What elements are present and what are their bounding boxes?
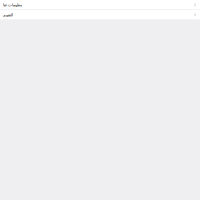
button[interactable]: التقييم	[0, 10, 200, 19]
button[interactable]: معلومات عنا	[0, 0, 200, 9]
staticText: معلومات عنا	[2, 2, 21, 7]
staticText: التقييم	[2, 12, 12, 17]
